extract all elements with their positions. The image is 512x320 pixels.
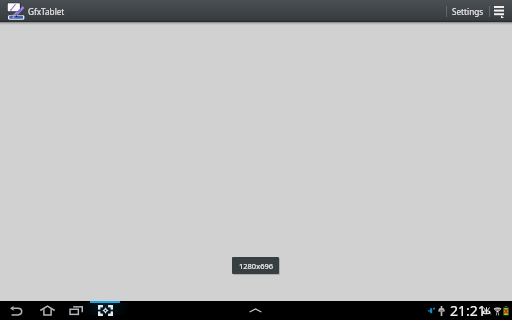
button[interactable]: GfxTablet: [0, 0, 69, 22]
button[interactable]: Recent apps: [61, 301, 91, 320]
button[interactable]: Home: [32, 301, 62, 320]
button[interactable]: Screenshot: [90, 301, 120, 320]
button[interactable]: System status: [424, 301, 512, 320]
button[interactable]: Back: [1, 301, 31, 320]
button[interactable]: More options: [490, 0, 507, 22]
button[interactable]: Settings: [447, 0, 489, 22]
button[interactable]: Show notifications: [249, 307, 262, 314]
staticText: 1280x696: [239, 261, 273, 271]
staticText: Settings: [452, 6, 484, 17]
staticText: 21:21: [450, 301, 486, 320]
staticText: GfxTablet: [28, 6, 65, 17]
